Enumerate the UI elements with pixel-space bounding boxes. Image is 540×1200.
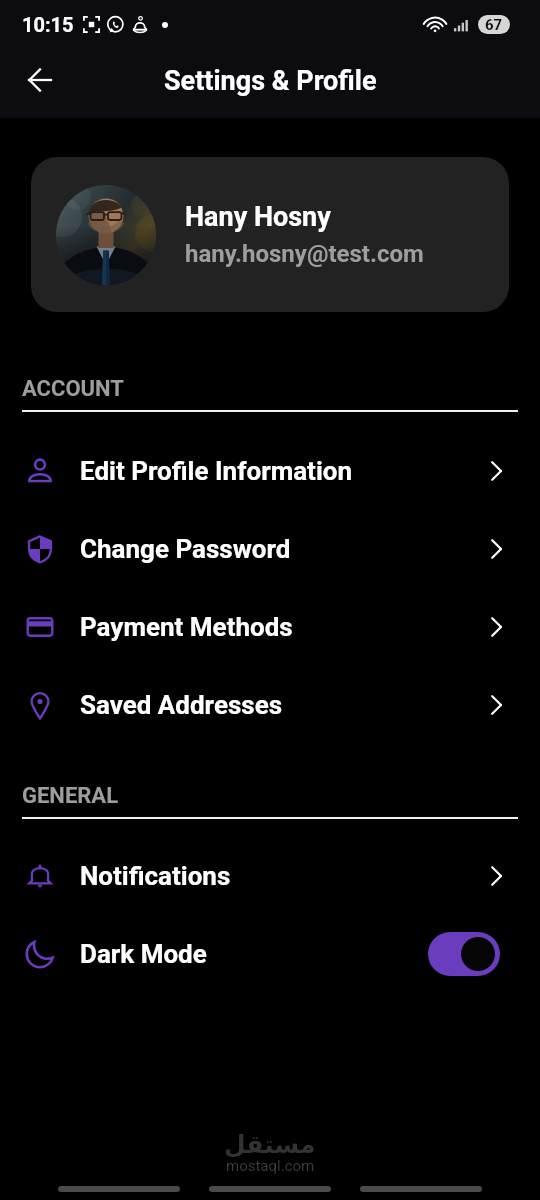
staticText: GENERAL	[22, 783, 119, 809]
button[interactable]: Payment Methods	[0, 588, 540, 666]
staticText: Dark Mode	[80, 939, 207, 969]
button[interactable]: Dark Mode	[0, 915, 540, 993]
staticText: Hany Hosny	[185, 201, 331, 233]
button[interactable]: Hany Hosny	[31, 157, 509, 312]
staticText: Saved Addresses	[80, 690, 283, 720]
button[interactable]: Dark Mode toggle	[428, 932, 500, 976]
button[interactable]: Saved Addresses	[0, 666, 540, 744]
staticText: mostaql.com	[226, 1157, 315, 1175]
staticText: hany.hosny@test.com	[185, 240, 424, 268]
button[interactable]: Change Password	[0, 510, 540, 588]
staticText: Change Password	[80, 534, 291, 564]
staticText: Payment Methods	[80, 612, 293, 642]
staticText: Edit Profile Information	[80, 456, 353, 486]
staticText: 10:15	[22, 13, 74, 36]
button[interactable]: Notifications	[0, 837, 540, 915]
button[interactable]: Back	[16, 56, 64, 104]
staticText: Notifications	[80, 861, 231, 891]
staticText: Settings & Profile	[164, 65, 377, 97]
staticText: 67	[485, 16, 503, 34]
button[interactable]: Edit Profile Information	[0, 432, 540, 510]
staticText: مستقل	[224, 1130, 316, 1157]
staticText: ACCOUNT	[22, 376, 124, 402]
